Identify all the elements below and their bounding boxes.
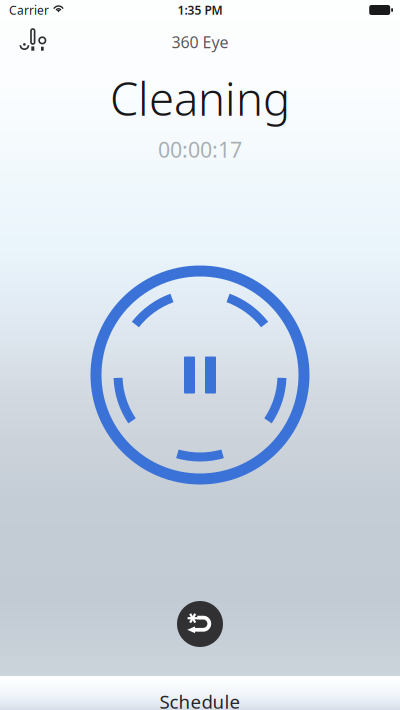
button[interactable]: Cleaning preferences [0, 24, 58, 60]
button[interactable]: Return to dock [177, 601, 223, 647]
staticText: Cleaning [110, 68, 290, 128]
staticText: Carrier [9, 2, 49, 18]
staticText: 360 Eye [171, 31, 228, 53]
staticText: 00:00:17 [158, 135, 242, 163]
button[interactable]: Schedule [0, 676, 400, 710]
staticText: Schedule [159, 689, 240, 710]
staticText: 1:35 PM [177, 2, 222, 18]
